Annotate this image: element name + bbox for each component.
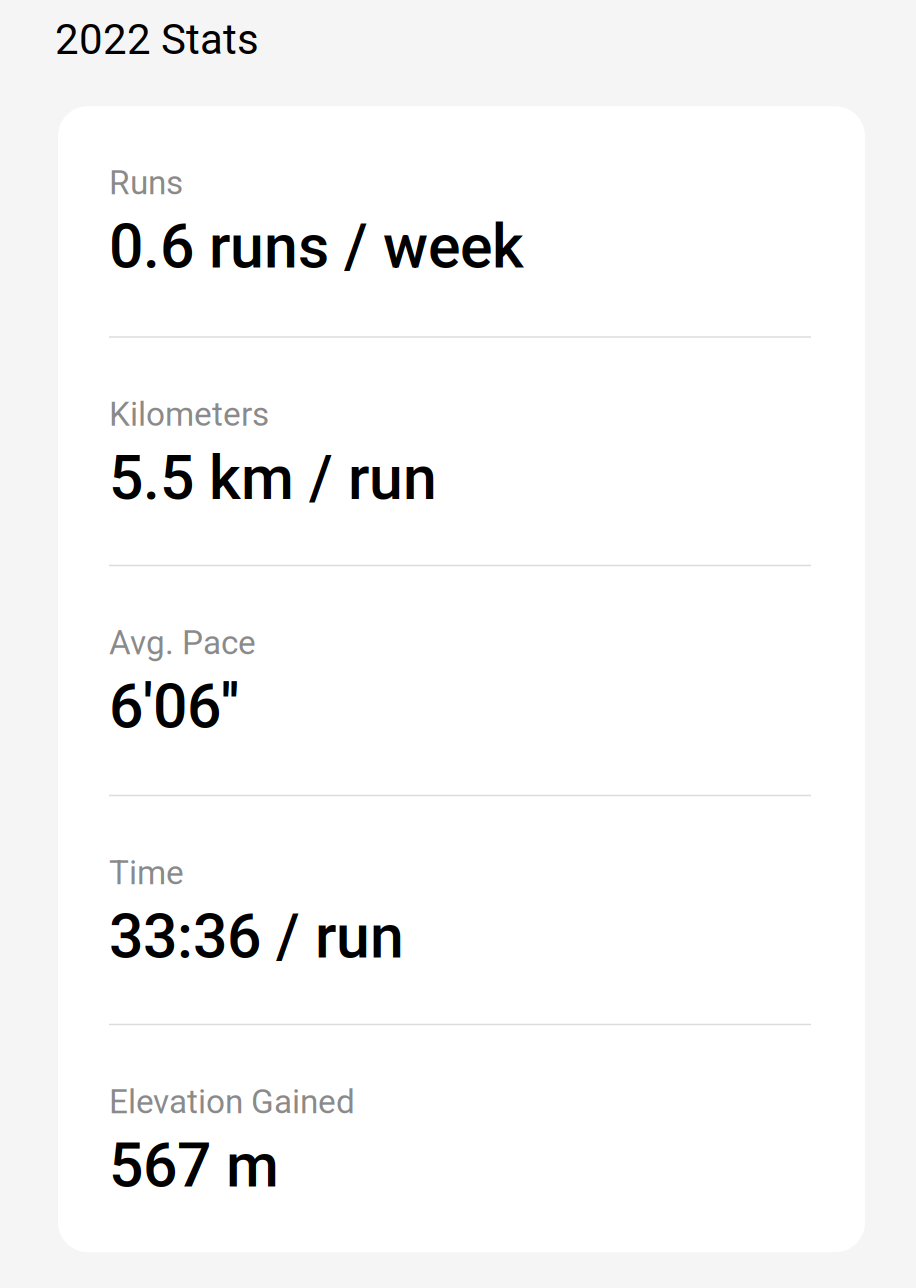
staticText: Elevation Gained: [109, 1082, 355, 1121]
staticText: 567 m: [109, 1130, 279, 1201]
staticText: 5.5 km / run: [109, 443, 437, 514]
button[interactable]: Avg. Pace: [109, 566, 811, 796]
button[interactable]: Time: [109, 796, 811, 1025]
staticText: Runs: [109, 163, 183, 202]
staticText: Kilometers: [109, 395, 269, 434]
button[interactable]: Kilometers: [109, 338, 811, 566]
button[interactable]: Runs: [109, 106, 811, 338]
button[interactable]: Elevation Gained: [109, 1025, 811, 1252]
staticText: 33:36 / run: [109, 901, 404, 972]
staticText: 2022 Stats: [55, 15, 259, 64]
staticText: 6'06'': [109, 671, 239, 742]
staticText: 0.6 runs / week: [109, 211, 524, 282]
staticText: Time: [109, 853, 184, 892]
staticText: Avg. Pace: [109, 623, 256, 662]
